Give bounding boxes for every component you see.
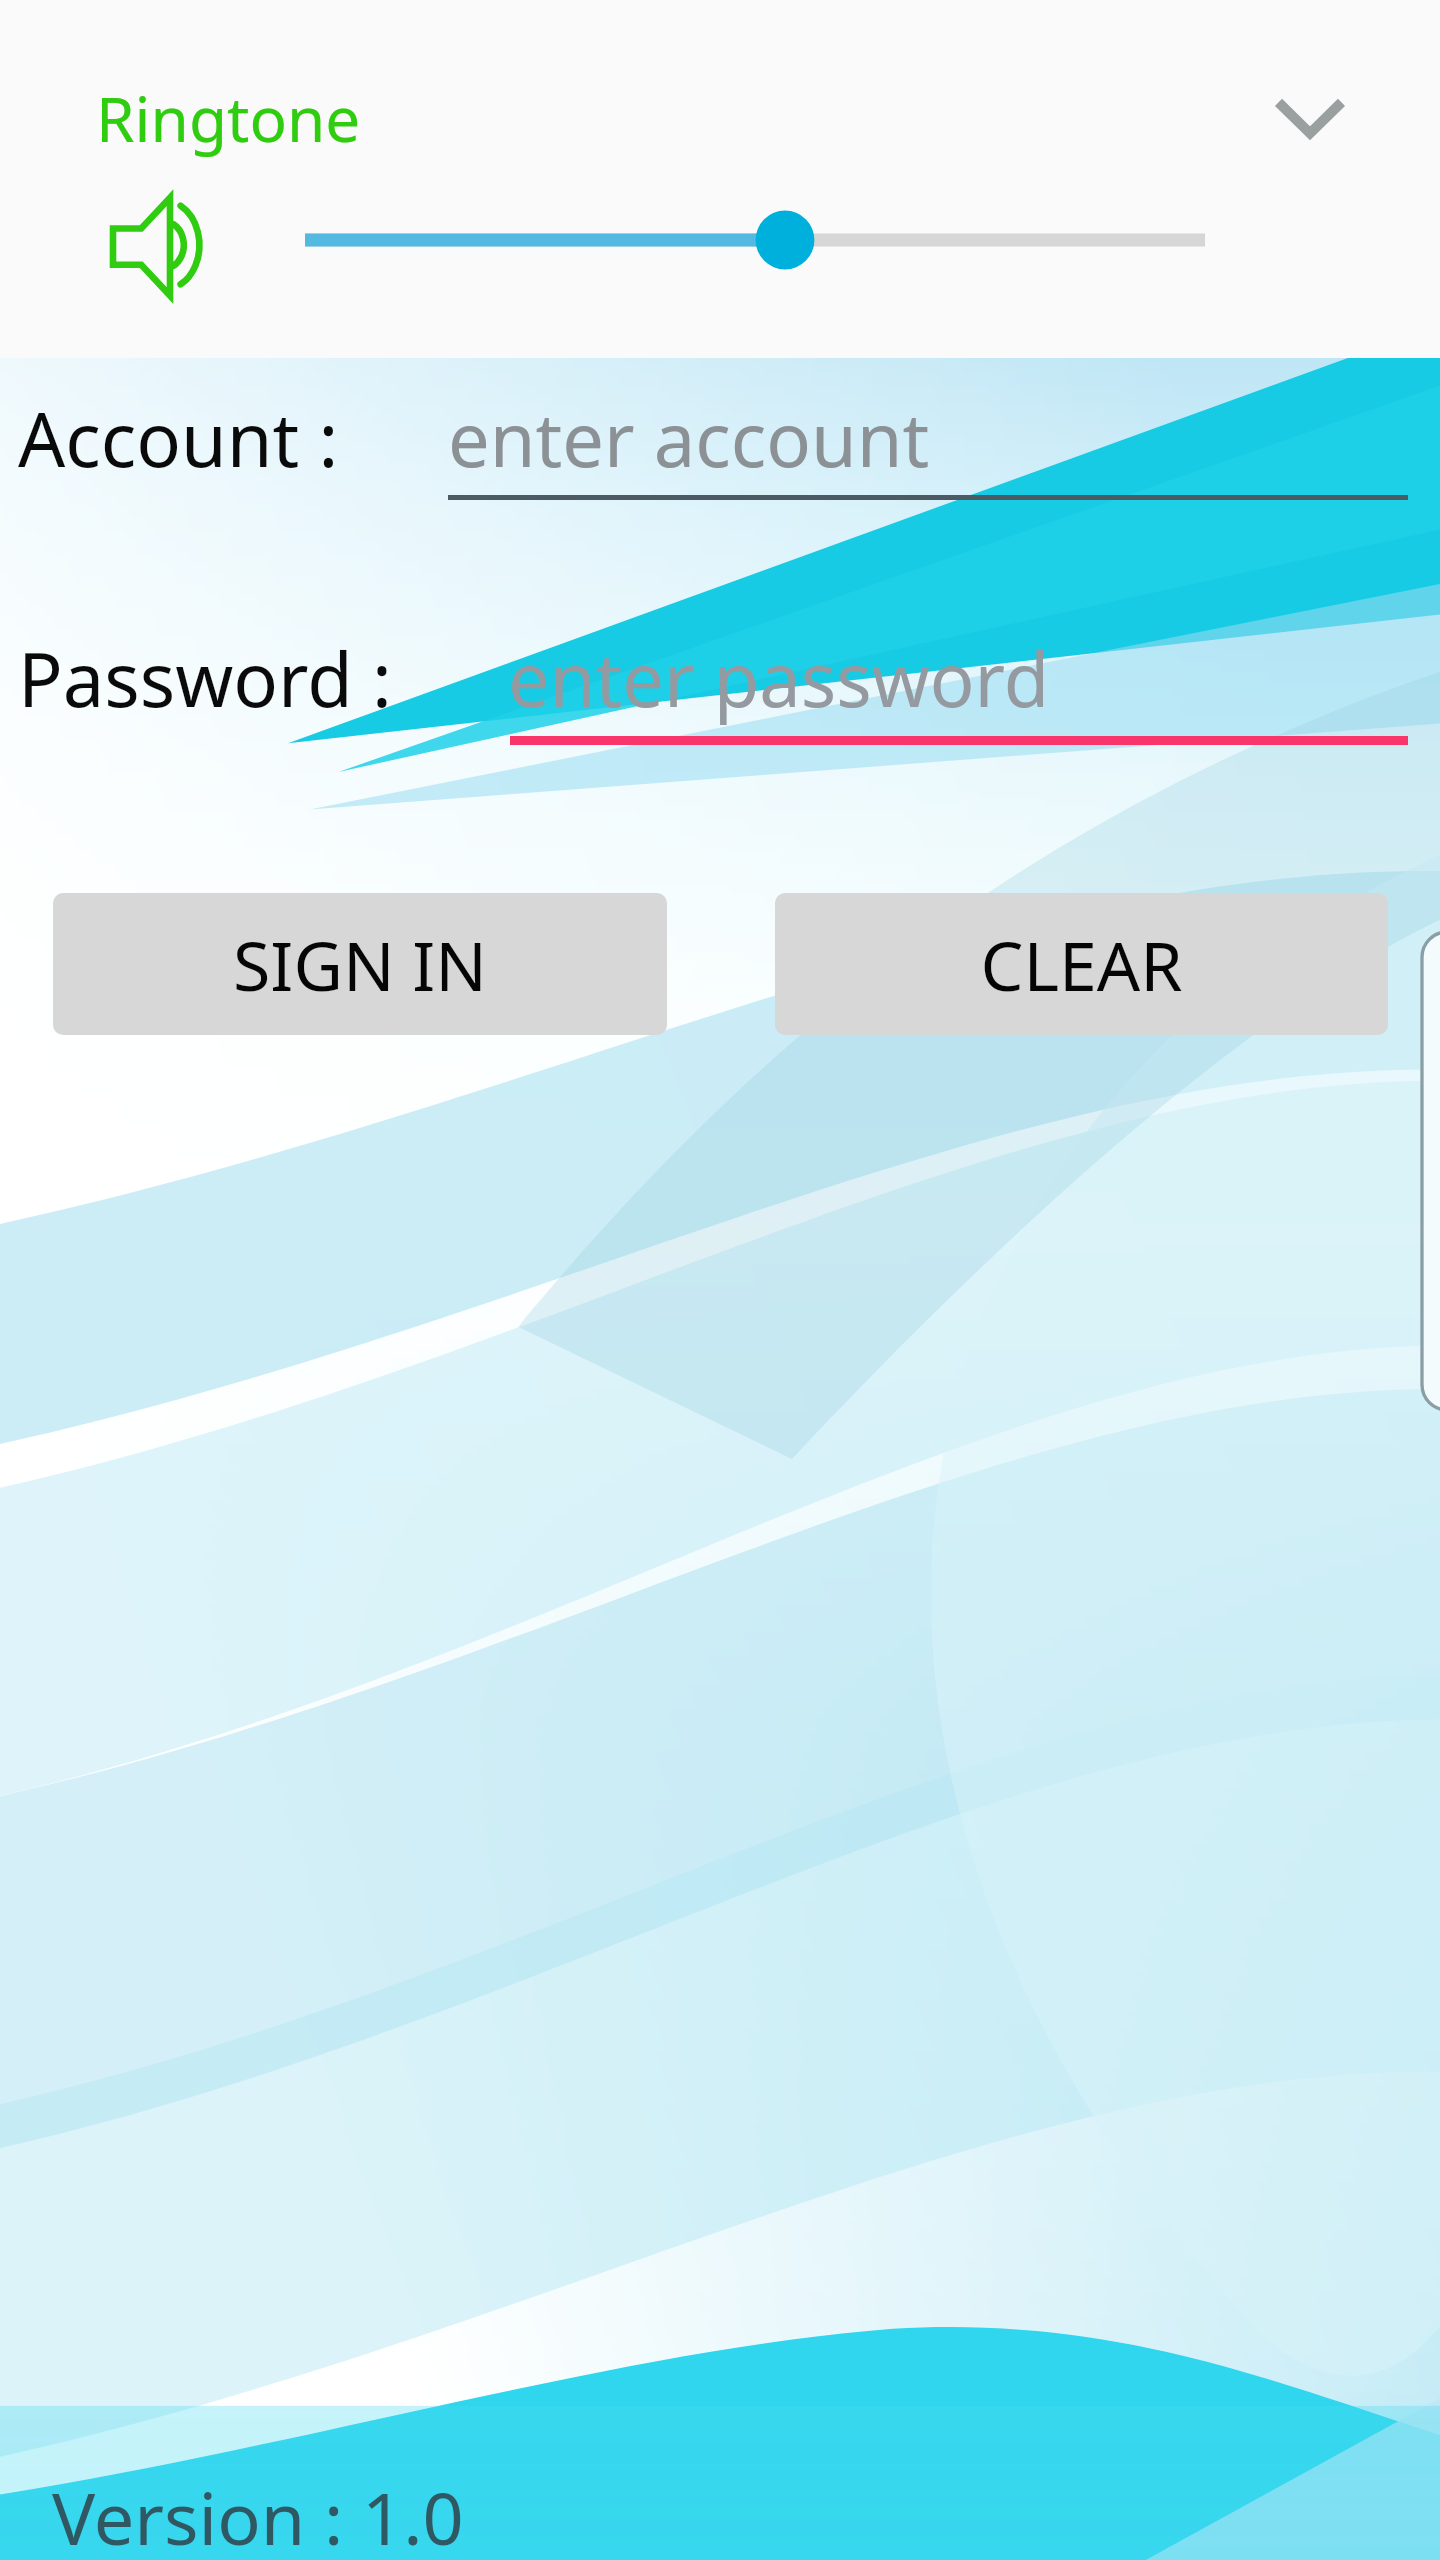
button[interactable]: enter password: [508, 618, 1408, 748]
staticText: Ringtone: [96, 76, 361, 160]
staticText: Password :: [18, 628, 392, 729]
button[interactable]: Volume: [104, 190, 224, 300]
staticText: SIGN IN: [233, 918, 487, 1011]
button[interactable]: enter account: [448, 378, 1408, 508]
button[interactable]: SIGN IN: [53, 893, 667, 1035]
staticText: Version : 1.0: [52, 2468, 464, 2560]
button[interactable]: Ringtone volume slider: [275, 180, 1235, 300]
staticText: enter password: [508, 628, 1050, 729]
staticText: CLEAR: [980, 918, 1183, 1011]
staticText: Account :: [18, 388, 339, 489]
staticText: enter account: [448, 388, 930, 489]
button[interactable]: CLEAR: [775, 893, 1388, 1035]
button[interactable]: Expand ringtone options: [1240, 46, 1380, 186]
